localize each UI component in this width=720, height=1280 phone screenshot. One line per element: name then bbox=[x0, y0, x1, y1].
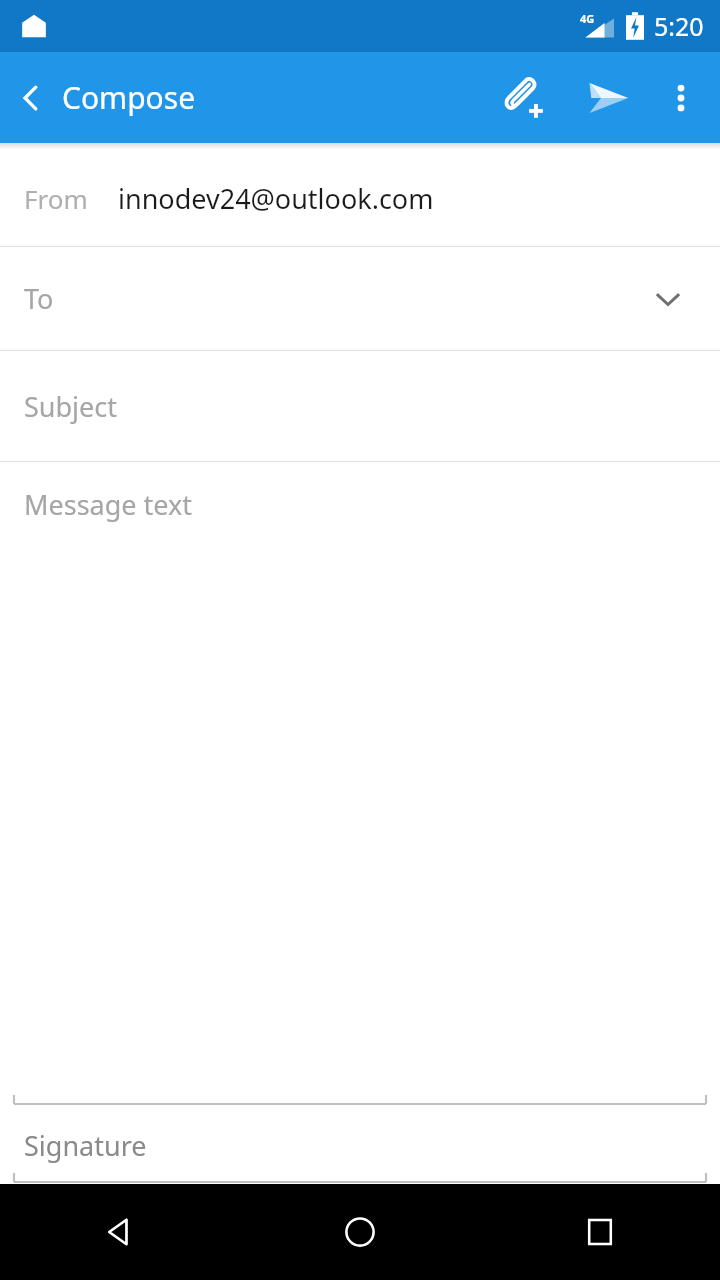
button[interactable]: Send bbox=[566, 52, 650, 143]
staticText: 4G bbox=[580, 11, 595, 26]
button[interactable]: Home bbox=[240, 1184, 480, 1280]
staticText: Signature bbox=[24, 1127, 147, 1164]
button[interactable]: Message text bbox=[0, 462, 720, 1106]
button[interactable]: More options bbox=[650, 52, 712, 143]
button[interactable]: Attach file bbox=[482, 52, 566, 143]
button[interactable]: Compose bbox=[62, 77, 196, 118]
button[interactable]: Back bbox=[0, 52, 62, 143]
button[interactable]: To bbox=[0, 247, 720, 350]
staticText: innodev24@outlook.com bbox=[118, 180, 434, 217]
button[interactable]: Show more recipients bbox=[640, 271, 696, 327]
button[interactable]: Signature bbox=[0, 1106, 720, 1184]
staticText: To bbox=[24, 280, 54, 317]
staticText: Message text bbox=[24, 486, 193, 523]
button[interactable]: Back bbox=[0, 1184, 240, 1280]
staticText: 5:20 bbox=[654, 9, 704, 43]
button[interactable]: Subject bbox=[0, 351, 720, 461]
staticText: From bbox=[24, 181, 88, 216]
button[interactable]: Recent apps bbox=[480, 1184, 720, 1280]
staticText: Subject bbox=[24, 388, 118, 425]
button[interactable]: From bbox=[0, 150, 720, 246]
